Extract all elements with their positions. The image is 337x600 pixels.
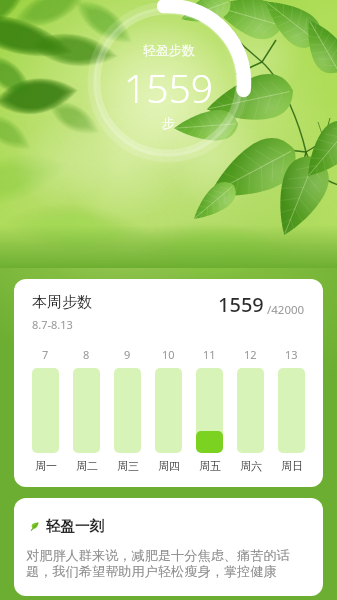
staticText: 10 <box>162 347 175 362</box>
staticText: 7 <box>42 347 49 362</box>
staticText: 对肥胖人群来说，减肥是十分焦虑、痛苦的话题，我们希望帮助用户轻松瘦身，掌控健康 <box>26 547 303 580</box>
button[interactable]: 本周步数 <box>14 279 323 487</box>
staticText: 本周步数 <box>32 293 92 312</box>
staticText: 9 <box>124 347 131 362</box>
staticText: 周五 <box>199 459 221 473</box>
staticText: 8 <box>83 347 90 362</box>
button[interactable]: 轻盈一刻 <box>14 498 323 596</box>
staticText: 12 <box>244 347 257 362</box>
staticText: 步 <box>162 115 175 131</box>
staticText: /42000 <box>264 302 305 318</box>
staticText: 周一 <box>35 459 57 473</box>
staticText: 周六 <box>240 459 262 473</box>
staticText: 1559 <box>124 61 214 114</box>
staticText: 轻盈一刻 <box>46 517 104 535</box>
staticText: 13 <box>285 347 298 362</box>
staticText: 1559 <box>218 291 264 318</box>
staticText: 11 <box>203 347 216 362</box>
staticText: 周日 <box>281 459 303 473</box>
staticText: 周三 <box>117 459 139 473</box>
staticText: 周四 <box>158 459 180 473</box>
staticText: 轻盈步数 <box>143 42 195 58</box>
staticText: 8.7-8.13 <box>32 317 73 332</box>
staticText: 周二 <box>76 459 98 473</box>
